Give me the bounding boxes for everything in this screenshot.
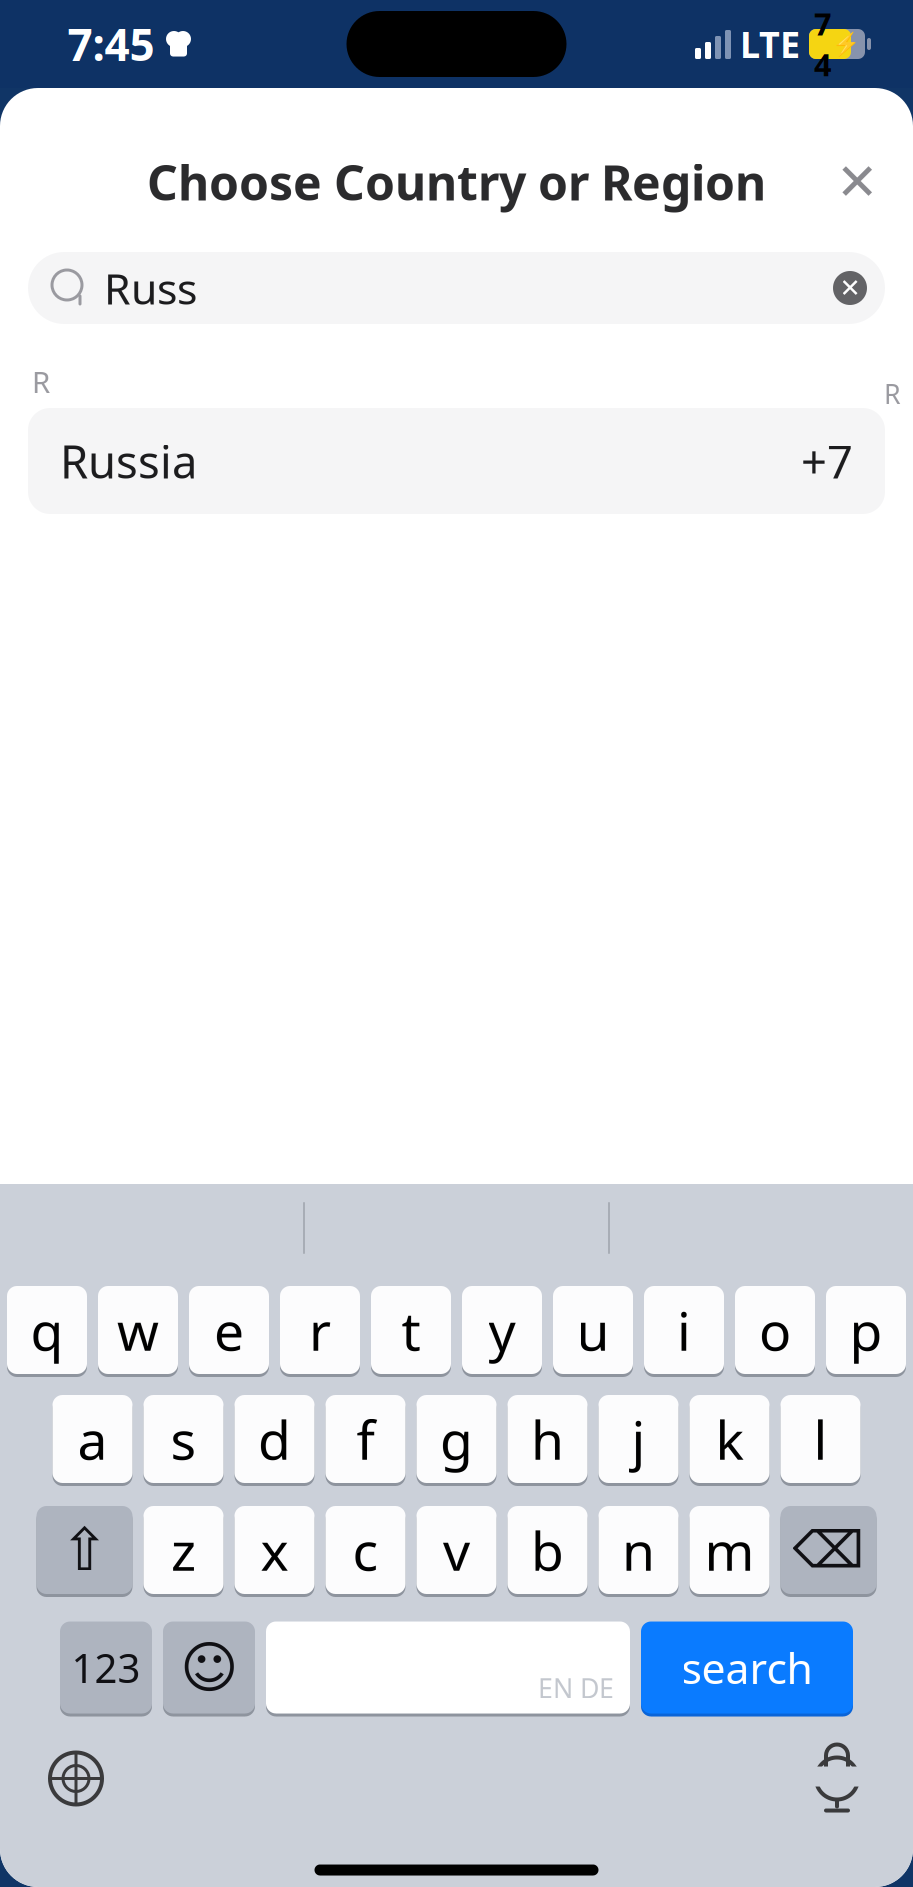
- button[interactable]: x: [234, 1504, 314, 1595]
- button[interactable]: s: [143, 1393, 223, 1484]
- button[interactable]: v: [416, 1504, 496, 1595]
- staticText: y: [488, 1295, 515, 1365]
- staticText: Russ: [104, 260, 197, 316]
- button[interactable]: c: [325, 1504, 405, 1595]
- button[interactable]: Close: [819, 144, 895, 220]
- staticText: +7: [801, 431, 853, 491]
- button[interactable]: h: [507, 1393, 587, 1484]
- staticText: u: [576, 1295, 609, 1365]
- staticText: k: [715, 1404, 743, 1474]
- staticText: d: [258, 1404, 291, 1474]
- staticText: o: [759, 1295, 791, 1365]
- staticText: EN DE: [538, 1670, 614, 1705]
- staticText: g: [440, 1404, 473, 1474]
- staticText: r: [309, 1295, 331, 1365]
- button[interactable]: e: [189, 1284, 269, 1375]
- button[interactable]: j: [598, 1393, 678, 1484]
- button[interactable]: Delete: [780, 1504, 876, 1595]
- button[interactable]: o: [735, 1284, 815, 1375]
- button[interactable]: d: [234, 1393, 314, 1484]
- staticText: b: [531, 1515, 564, 1585]
- button[interactable]: y: [462, 1284, 542, 1375]
- button[interactable]: n: [598, 1504, 678, 1595]
- staticText: t: [401, 1295, 420, 1365]
- button[interactable]: a: [52, 1393, 132, 1484]
- staticText: 74: [814, 3, 832, 85]
- button[interactable]: Space: [266, 1620, 630, 1715]
- staticText: Russia: [60, 431, 197, 491]
- staticText: q: [30, 1295, 63, 1365]
- button[interactable]: w: [98, 1284, 178, 1375]
- staticText: s: [170, 1404, 196, 1474]
- button[interactable]: Next keyboard: [38, 1740, 114, 1816]
- staticText: i: [677, 1295, 691, 1365]
- staticText: j: [631, 1404, 645, 1474]
- button[interactable]: p: [826, 1284, 906, 1375]
- button[interactable]: r: [280, 1284, 360, 1375]
- button[interactable]: q: [7, 1284, 87, 1375]
- staticText: w: [117, 1295, 159, 1365]
- staticText: a: [77, 1404, 107, 1474]
- staticText: Choose Country or Region: [147, 150, 766, 214]
- button[interactable]: g: [416, 1393, 496, 1484]
- staticText: m: [704, 1515, 754, 1585]
- staticText: ⌫: [792, 1521, 864, 1579]
- staticText: p: [849, 1295, 882, 1365]
- button[interactable]: Dictation: [799, 1740, 875, 1816]
- button[interactable]: Russia: [28, 408, 885, 514]
- button[interactable]: 123: [60, 1620, 152, 1715]
- staticText: R: [884, 376, 901, 411]
- button[interactable]: k: [689, 1393, 769, 1484]
- staticText: ✕: [836, 153, 878, 211]
- staticText: search: [681, 1639, 812, 1696]
- staticText: ⇧: [60, 1517, 109, 1583]
- staticText: 7:45: [67, 15, 154, 73]
- staticText: n: [622, 1515, 655, 1585]
- staticText: ⚡: [832, 31, 860, 57]
- button[interactable]: b: [507, 1504, 587, 1595]
- staticText: f: [356, 1404, 374, 1474]
- staticText: ☺: [180, 1636, 238, 1699]
- button[interactable]: Emoji: [163, 1620, 255, 1715]
- button[interactable]: i: [644, 1284, 724, 1375]
- staticText: v: [443, 1515, 470, 1585]
- button[interactable]: u: [553, 1284, 633, 1375]
- button[interactable]: f: [325, 1393, 405, 1484]
- staticText: z: [171, 1515, 196, 1585]
- button[interactable]: m: [689, 1504, 769, 1595]
- staticText: ✕: [839, 274, 860, 302]
- staticText: x: [260, 1515, 288, 1585]
- staticText: l: [813, 1404, 827, 1474]
- staticText: c: [352, 1515, 378, 1585]
- button[interactable]: z: [143, 1504, 223, 1595]
- staticText: h: [531, 1404, 564, 1474]
- button[interactable]: l: [780, 1393, 860, 1484]
- staticText: e: [214, 1295, 244, 1365]
- staticText: R: [32, 362, 50, 401]
- button[interactable]: Russ: [28, 252, 885, 324]
- staticText: LTE: [740, 20, 800, 68]
- button[interactable]: search: [641, 1620, 853, 1715]
- button[interactable]: t: [371, 1284, 451, 1375]
- staticText: 123: [71, 1641, 140, 1694]
- button[interactable]: Shift: [36, 1504, 132, 1595]
